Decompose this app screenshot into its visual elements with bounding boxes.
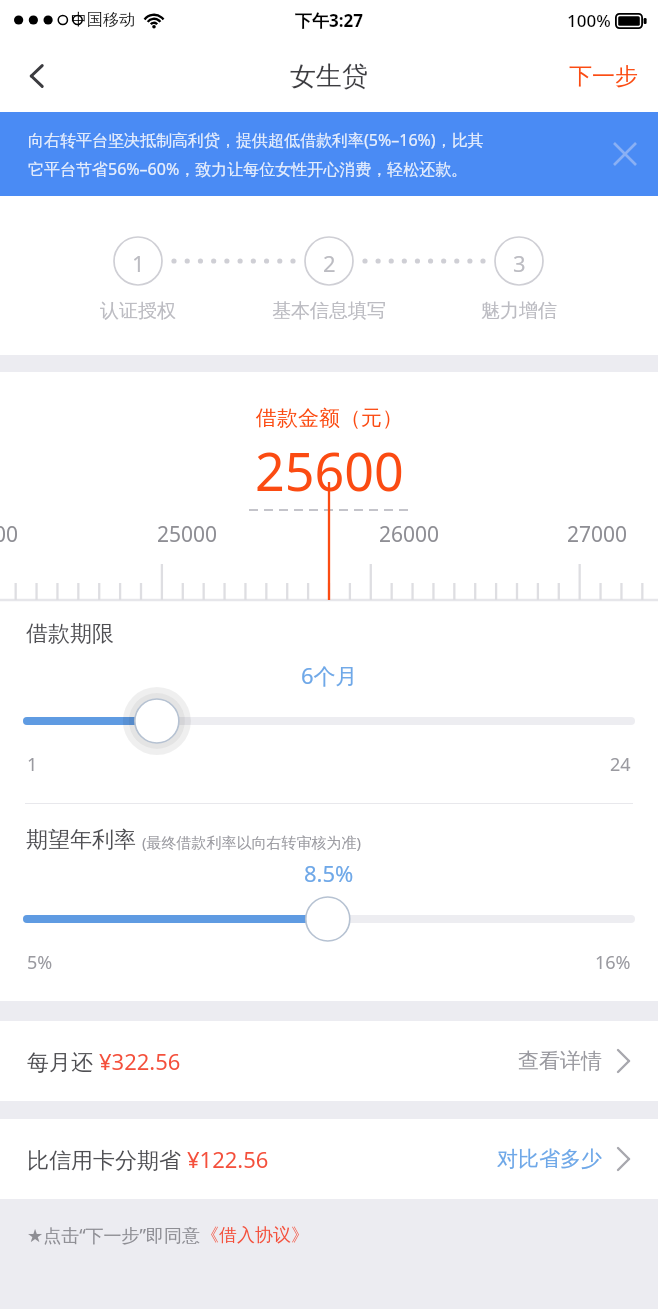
- staticText: 16%: [595, 950, 631, 975]
- staticText: 3: [513, 248, 526, 278]
- button[interactable]: Close banner: [602, 131, 648, 177]
- staticText: 借款金额（元）: [256, 405, 403, 431]
- staticText: 它平台节省56%–60%，致力让每位女性开心消费，轻松还款。: [28, 158, 468, 180]
- staticText: 8.5%: [304, 858, 354, 888]
- staticText: 27000: [567, 520, 628, 549]
- button[interactable]: 1: [68, 196, 208, 355]
- staticText: ¥322.56: [99, 1046, 181, 1076]
- staticText: 期望年利率: [26, 826, 136, 854]
- staticText: 000: [0, 520, 19, 549]
- staticText: 《借入协议》: [201, 1224, 309, 1247]
- staticText: 26000: [379, 520, 440, 549]
- staticText: 100%: [567, 9, 611, 32]
- staticText: 每月还: [27, 1046, 99, 1076]
- staticText: 25000: [157, 520, 218, 549]
- button[interactable]: 每月还: [0, 1021, 658, 1101]
- staticText: 女生贷: [290, 60, 368, 93]
- staticText: 25600: [255, 435, 404, 506]
- button[interactable]: ★点击“下一步”即同意: [27, 1223, 309, 1248]
- staticText: 2: [323, 248, 336, 278]
- staticText: 查看详情: [518, 1048, 602, 1074]
- button[interactable]: 2: [259, 196, 399, 355]
- button[interactable]: Back: [8, 47, 66, 105]
- staticText: 1: [27, 752, 38, 777]
- button[interactable]: Slider: [0, 888, 658, 950]
- staticText: 魅力增信: [449, 299, 589, 323]
- staticText: ★点击“下一步”即同意: [27, 1223, 201, 1248]
- staticText: 比信用卡分期省: [27, 1144, 187, 1174]
- button[interactable]: 3: [449, 196, 589, 355]
- button[interactable]: Slider: [0, 690, 658, 752]
- staticText: (最终借款利率以向右转审核为准): [142, 832, 362, 852]
- staticText: ¥122.56: [187, 1144, 269, 1174]
- staticText: 向右转平台坚决抵制高利贷，提供超低借款利率(5%–16%)，比其: [28, 129, 484, 151]
- staticText: 中国移动: [71, 10, 135, 30]
- button[interactable]: 比信用卡分期省: [0, 1119, 658, 1199]
- staticText: 借款期限: [26, 620, 114, 648]
- staticText: 1: [132, 248, 145, 278]
- staticText: 6个月: [301, 660, 358, 690]
- staticText: 下一步: [569, 62, 638, 91]
- staticText: 5%: [27, 950, 53, 975]
- staticText: 对比省多少: [497, 1146, 602, 1172]
- staticText: 认证授权: [68, 299, 208, 323]
- staticText: 基本信息填写: [259, 299, 399, 323]
- button[interactable]: 下一步: [549, 46, 658, 107]
- staticText: 下午3:27: [295, 9, 363, 32]
- staticText: 24: [610, 752, 631, 777]
